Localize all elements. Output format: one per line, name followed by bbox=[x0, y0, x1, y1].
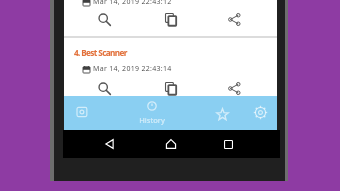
button[interactable]: Search bbox=[97, 81, 111, 95]
button[interactable]: Share bbox=[227, 12, 241, 26]
button[interactable]: Settings bbox=[251, 103, 270, 122]
button[interactable]: Copy bbox=[164, 12, 178, 26]
button[interactable]: History bbox=[132, 101, 172, 121]
button[interactable]: Home bbox=[162, 135, 180, 153]
button[interactable]: Recents bbox=[220, 136, 237, 153]
button[interactable]: Back bbox=[101, 135, 119, 153]
button[interactable]: Favorites bbox=[214, 106, 231, 123]
staticText: History bbox=[139, 115, 165, 125]
button[interactable]: Share bbox=[227, 81, 241, 95]
button[interactable]: Copy bbox=[164, 81, 178, 95]
button[interactable]: Scan bbox=[75, 104, 91, 120]
button[interactable]: Search bbox=[97, 12, 111, 26]
staticText: Mar 14, 2019 22:43:14 bbox=[93, 64, 172, 74]
staticText: Mar 14, 2019 22:43:12 bbox=[93, 0, 172, 7]
staticText: 4. Best Scanner bbox=[74, 47, 127, 58]
